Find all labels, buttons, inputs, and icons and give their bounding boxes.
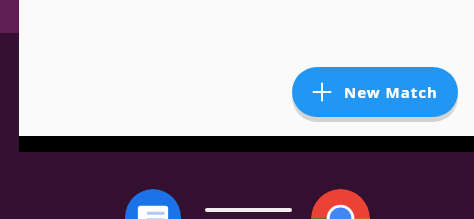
button[interactable]: Chrome (311, 189, 370, 219)
staticText: New Match (344, 82, 438, 102)
button[interactable]: Messages (125, 189, 181, 219)
button[interactable]: New Match (292, 67, 458, 117)
